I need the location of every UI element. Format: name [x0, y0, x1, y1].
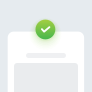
button[interactable]: Details	[0, 0, 92, 92]
button[interactable]: Success	[35, 20, 55, 39]
